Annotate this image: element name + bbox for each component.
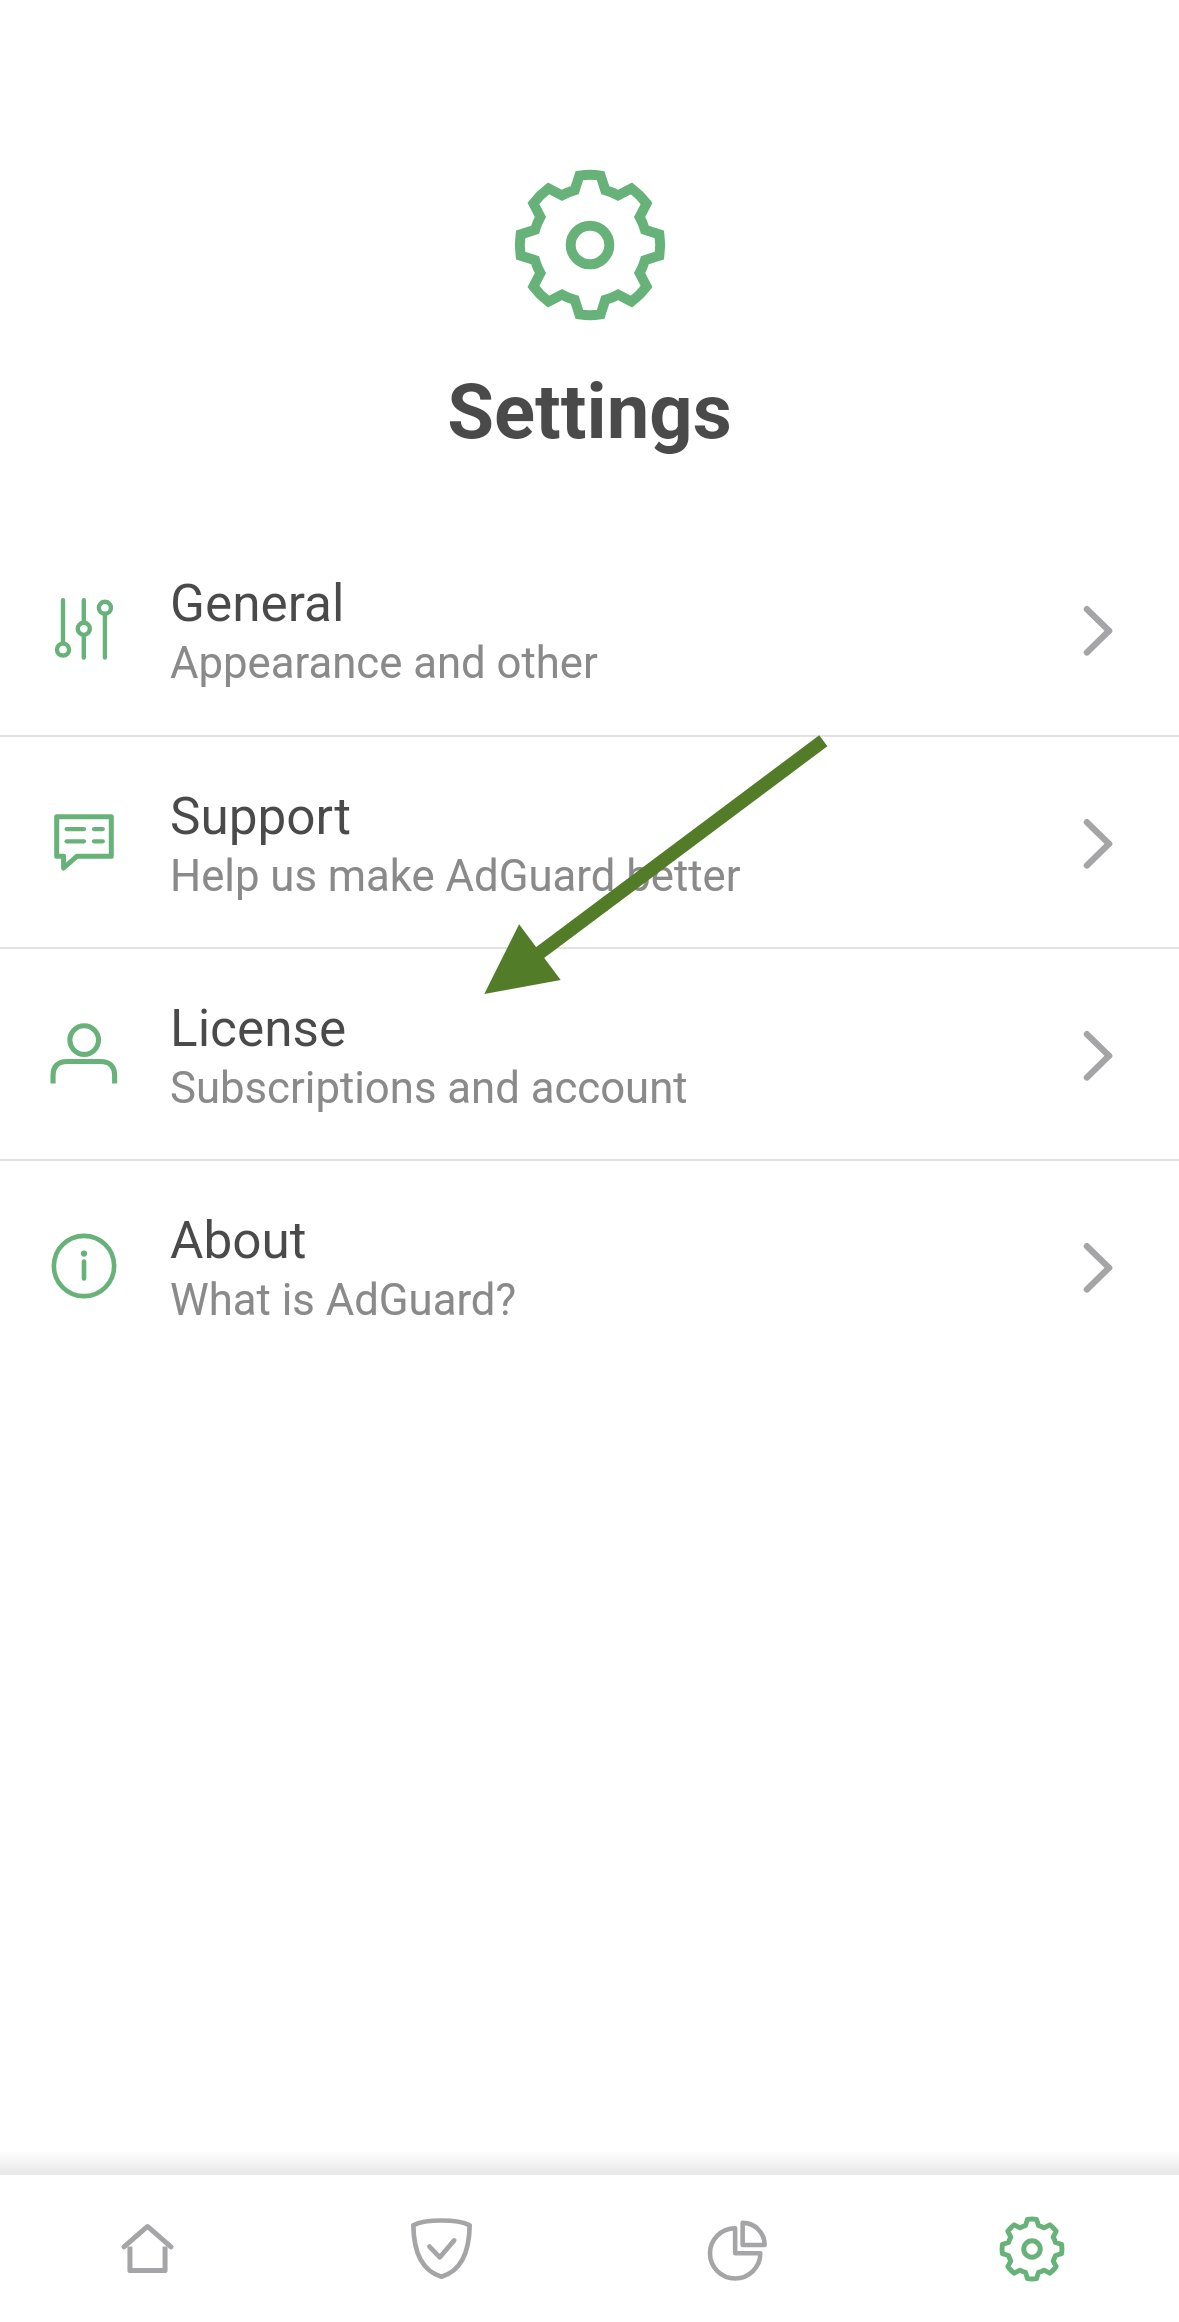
button[interactable]: Statistics — [589, 2175, 884, 2322]
staticText: General — [170, 573, 345, 633]
button[interactable]: Protection — [294, 2175, 589, 2322]
button[interactable]: License — [0, 949, 1179, 1159]
button[interactable]: General — [0, 523, 1179, 735]
staticText: Support — [170, 786, 352, 846]
staticText: About — [170, 1210, 307, 1270]
staticText: What is AdGuard? — [170, 1274, 517, 1325]
staticText: License — [170, 998, 347, 1058]
button[interactable]: Support — [0, 737, 1179, 947]
button[interactable]: Home — [0, 2175, 294, 2322]
staticText: Settings — [447, 367, 732, 456]
button[interactable]: About — [0, 1161, 1179, 1371]
staticText: Appearance and other — [170, 637, 598, 688]
button[interactable]: Settings — [884, 2175, 1179, 2322]
staticText: Help us make AdGuard better — [170, 850, 741, 901]
staticText: Subscriptions and account — [170, 1062, 688, 1113]
